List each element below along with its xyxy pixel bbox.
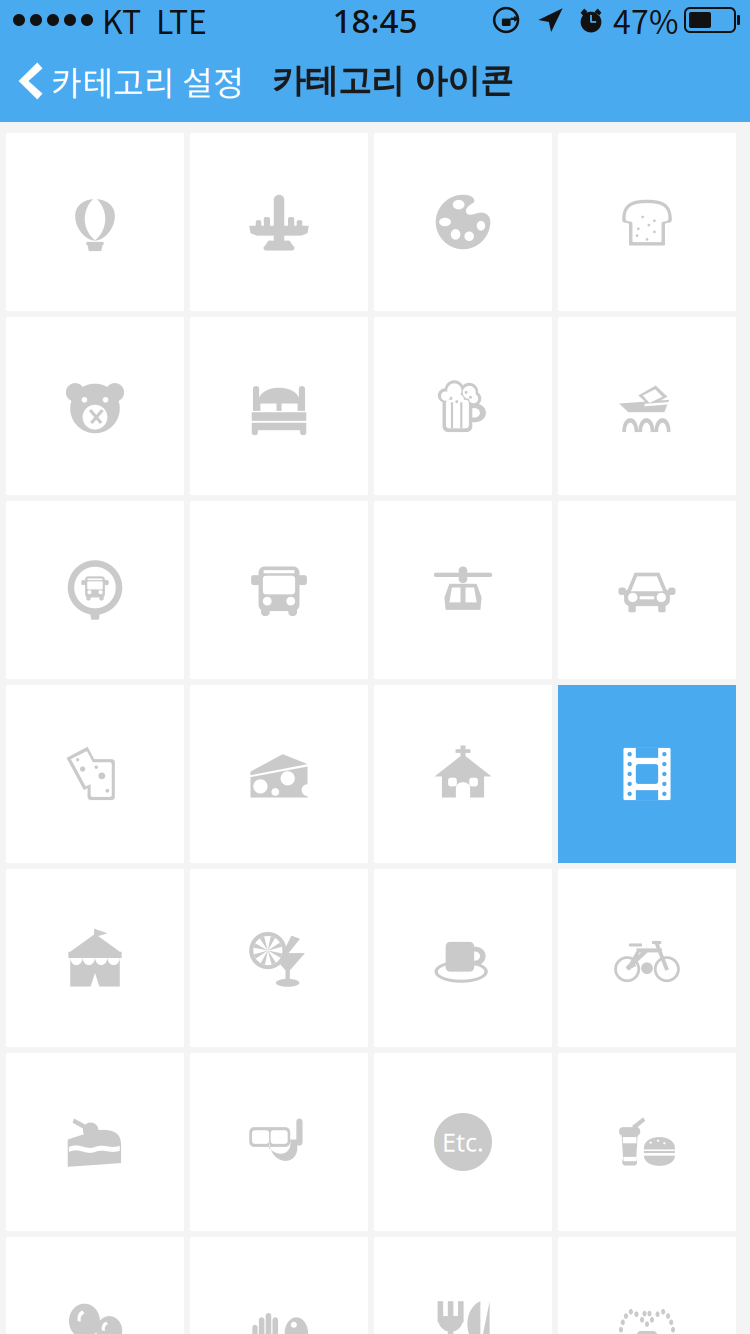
button[interactable] (190, 1237, 368, 1334)
button[interactable] (190, 133, 368, 311)
button[interactable] (190, 1053, 368, 1231)
button[interactable] (190, 317, 368, 495)
button[interactable] (558, 1053, 736, 1231)
button[interactable] (558, 501, 736, 679)
staticText: Etc. (442, 1125, 484, 1159)
button[interactable]: 카테고리 설정 (0, 40, 250, 122)
button[interactable] (558, 133, 736, 311)
button[interactable] (558, 869, 736, 1047)
button[interactable] (6, 685, 184, 863)
staticText: 카테고리 설정 (51, 57, 244, 105)
button[interactable] (190, 501, 368, 679)
staticText: KT (102, 0, 141, 43)
staticText: 18:45 (332, 0, 417, 43)
button[interactable] (6, 1053, 184, 1231)
button[interactable] (190, 869, 368, 1047)
button[interactable] (558, 317, 736, 495)
button[interactable] (374, 317, 552, 495)
button[interactable] (374, 869, 552, 1047)
button[interactable] (374, 133, 552, 311)
staticText: 카테고리 아이콘 (272, 60, 513, 102)
button[interactable]: Etc. (374, 1053, 552, 1231)
button[interactable] (374, 1237, 552, 1334)
button[interactable] (6, 1237, 184, 1334)
button[interactable] (6, 501, 184, 679)
button[interactable] (374, 501, 552, 679)
button[interactable] (6, 133, 184, 311)
staticText: 47% (613, 0, 678, 43)
button[interactable] (558, 685, 736, 863)
button[interactable] (374, 685, 552, 863)
button[interactable] (558, 1237, 736, 1334)
button[interactable] (6, 869, 184, 1047)
staticText: LTE (156, 0, 207, 43)
button[interactable] (6, 317, 184, 495)
button[interactable] (190, 685, 368, 863)
